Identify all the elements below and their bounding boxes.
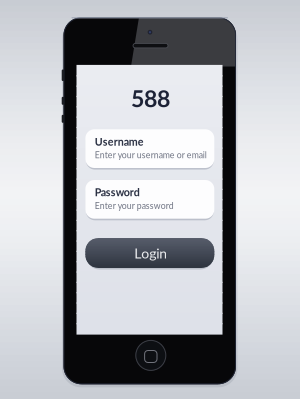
staticText: Username: [95, 135, 144, 148]
staticText: Login: [134, 245, 167, 261]
staticText: Password: [95, 186, 140, 199]
button[interactable]: Username: [0, 0, 300, 399]
button[interactable]: Password: [0, 0, 300, 399]
button[interactable]: Login: [0, 0, 300, 399]
staticText: Enter your password: [95, 200, 174, 211]
staticText: 588: [131, 84, 170, 112]
staticText: Enter your username or email: [95, 150, 207, 160]
